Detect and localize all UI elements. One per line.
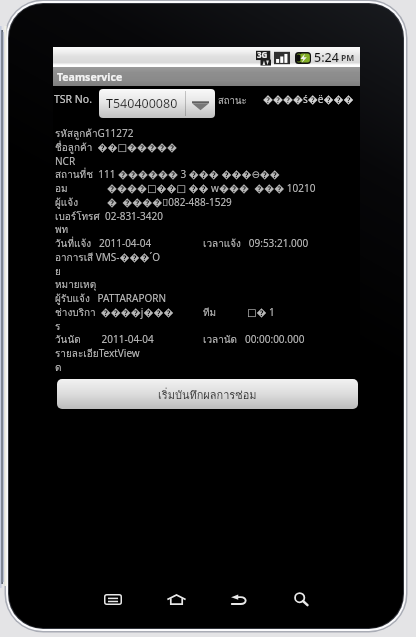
staticText: สถานะ (218, 93, 247, 108)
staticText: 3G (257, 49, 268, 60)
staticText: 5:24 (314, 49, 339, 66)
staticText: TSR No. (54, 92, 93, 106)
button[interactable]: T540400080 (99, 89, 215, 118)
staticText: ผู้แจ้ง (55, 195, 79, 211)
staticText: ด (55, 360, 62, 376)
staticText: NCR (55, 154, 76, 168)
staticText: รหัสลูกค้าG11272 (55, 126, 134, 142)
staticText: อาการเสี VMS-���´O (55, 250, 161, 266)
staticText: Teamservice (57, 70, 123, 84)
staticText: เบอร์โทรศ 02-831-3420 (55, 209, 163, 225)
staticText: เวลาแจ้ง 09:53:21.000 (203, 236, 309, 252)
staticText: วันที่แจ้ง 2011-04-04 (55, 236, 152, 252)
button[interactable]: Search (285, 583, 317, 615)
staticText: � ����ฺ082-488-1529 (107, 195, 232, 209)
staticText: ����□��□ �� w��� ��� 10210 (107, 181, 316, 195)
staticText: วันนัด 2011-04-04 (55, 332, 154, 348)
button[interactable]: Home (160, 583, 192, 615)
staticText: หมายเหตุ (55, 277, 97, 293)
staticText: ย (55, 264, 61, 280)
button[interactable]: Menu (97, 583, 129, 615)
staticText: รายละเอียTextView (55, 346, 140, 362)
staticText: PM (341, 52, 355, 64)
staticText: T540400080 (106, 95, 178, 112)
staticText: □� 1 (247, 305, 275, 319)
staticText: อม (55, 181, 68, 197)
staticText: ร (55, 319, 61, 335)
staticText: ผู้รับแจ้ง PATTARAPORN (55, 291, 167, 307)
staticText: เวลานัด 00:00:00.000 (203, 332, 305, 348)
button[interactable]: เริ่มบันทึกผลการซ่อม (57, 379, 358, 409)
button[interactable]: Back (223, 583, 255, 615)
staticText: ชื่อลูกค้า ��□����� (55, 140, 177, 156)
staticText: เริ่มบันทึกผลการซ่อม (158, 386, 257, 403)
staticText: พท (55, 222, 69, 238)
staticText: สถานที่ช 111 ������ 3 ��� ���⊖�� (55, 167, 280, 183)
staticText: ช่างบริกา ����j��� (55, 305, 174, 321)
staticText: ����ś�ë��� (263, 92, 354, 106)
staticText: ทีม (203, 305, 217, 321)
